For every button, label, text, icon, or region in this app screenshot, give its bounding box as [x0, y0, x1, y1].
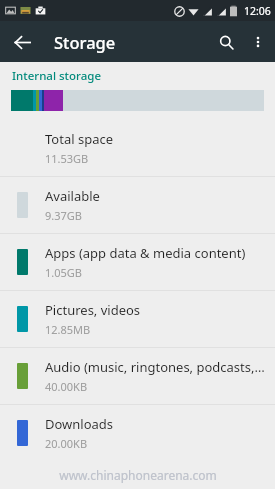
staticText: 1.05GB [45, 265, 82, 280]
staticText: Internal storage [12, 68, 101, 84]
staticText: Storage [54, 31, 116, 53]
button[interactable]: Total space [0, 120, 275, 176]
staticText: Available [45, 187, 100, 205]
button[interactable]: Pictures, videos [0, 291, 275, 347]
button[interactable]: Audio (music, ringtones, podcasts, et.. [0, 348, 275, 404]
staticText: Audio (music, ringtones, podcasts, et.. [45, 358, 267, 376]
staticText: 12:06 [244, 4, 271, 18]
staticText: Downloads [45, 415, 114, 433]
staticText: 9.37GB [45, 208, 82, 223]
staticText: 20.00KB [45, 436, 88, 451]
button[interactable]: Downloads [0, 405, 275, 461]
staticText: Total space [45, 130, 113, 148]
staticText: 11.53GB [45, 151, 89, 166]
staticText: www.chinaphonearena.com [59, 467, 217, 483]
button[interactable]: Available [0, 177, 275, 233]
staticText: Pictures, videos [45, 301, 141, 319]
button[interactable]: Back [6, 26, 38, 58]
staticText: 12.85MB [45, 322, 91, 337]
staticText: Apps (app data & media content) [45, 244, 246, 262]
button[interactable]: More options [243, 27, 273, 57]
button[interactable]: Search [209, 25, 243, 59]
staticText: 40.00KB [45, 379, 88, 394]
button[interactable]: Apps (app data & media content) [0, 234, 275, 290]
